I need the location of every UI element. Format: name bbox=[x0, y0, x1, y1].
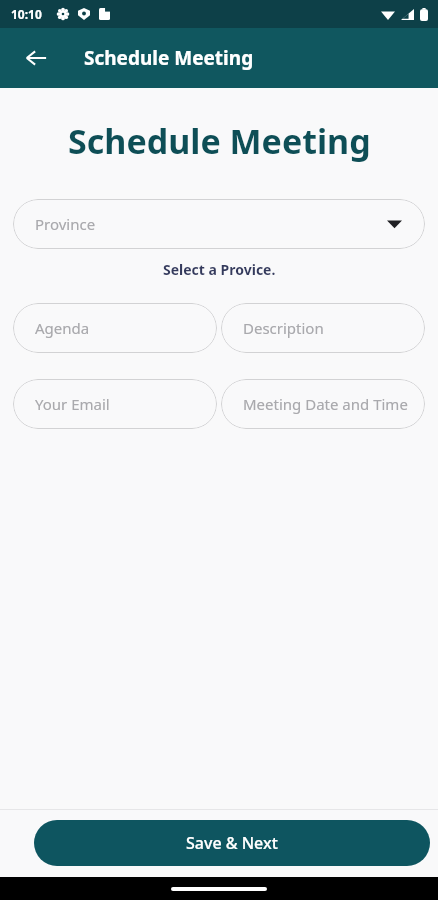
staticText: Schedule Meeting bbox=[84, 45, 254, 71]
button[interactable]: Save & Next bbox=[34, 820, 430, 866]
staticText: Province bbox=[35, 214, 96, 234]
button[interactable]: Province bbox=[13, 199, 425, 249]
button[interactable]: Agenda bbox=[13, 303, 217, 353]
staticText: 10:10 bbox=[11, 6, 42, 22]
staticText: Schedule Meeting bbox=[68, 118, 371, 164]
staticText: Meeting Date and Time bbox=[243, 394, 408, 414]
staticText: Agenda bbox=[35, 318, 90, 338]
staticText: Select a Provice. bbox=[163, 260, 276, 279]
button[interactable]: Description bbox=[221, 303, 425, 353]
staticText: Save & Next bbox=[186, 832, 278, 854]
button[interactable]: Your Email bbox=[13, 379, 217, 429]
staticText: Your Email bbox=[35, 394, 110, 414]
staticText: Description bbox=[243, 318, 324, 338]
button[interactable]: Back bbox=[14, 36, 58, 80]
button[interactable]: Meeting Date and Time bbox=[221, 379, 425, 429]
